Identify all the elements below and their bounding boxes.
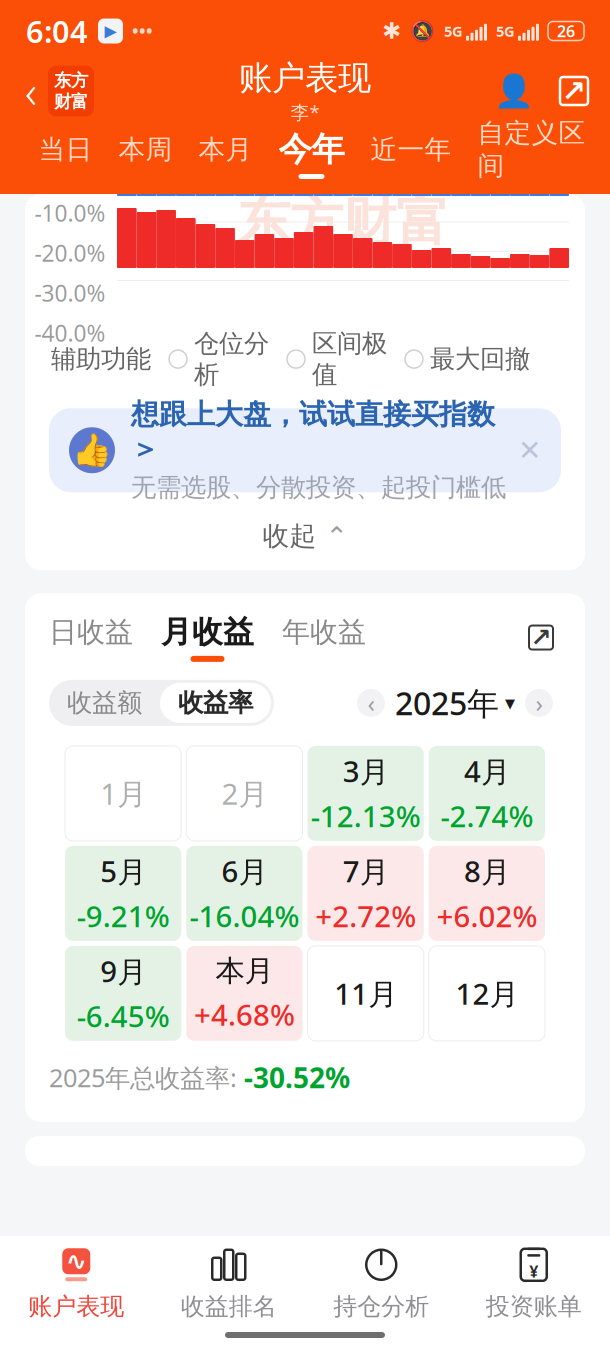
staticText: 11月: [334, 974, 397, 1013]
staticText: 月收益: [161, 613, 254, 651]
button[interactable]: 东方财富: [48, 66, 94, 116]
button[interactable]: 下一年: [525, 689, 553, 717]
staticText: 收起: [262, 520, 316, 553]
button[interactable]: 近一年: [357, 128, 464, 180]
staticText: -12.13%: [311, 796, 421, 835]
staticText: -30.0%: [34, 278, 105, 308]
staticText: 9月: [100, 951, 146, 990]
staticText: 12月: [455, 974, 518, 1013]
staticText: 最大回撤: [430, 344, 530, 375]
button[interactable]: 本周: [105, 128, 185, 180]
button[interactable]: 4月: [429, 746, 545, 841]
staticText: 今年: [278, 129, 344, 170]
button[interactable]: 今年: [265, 128, 357, 180]
button[interactable]: 本月: [185, 128, 265, 180]
staticText: 本月: [198, 133, 252, 166]
button[interactable]: 月收益: [161, 613, 254, 662]
button[interactable]: 👍: [25, 408, 585, 492]
staticText: 2025年总收益率:: [49, 1061, 244, 1094]
button[interactable]: 本月: [186, 946, 302, 1041]
button[interactable]: 区间极值: [287, 328, 387, 390]
button[interactable]: 返回: [14, 66, 48, 116]
staticText: 3月: [343, 751, 389, 790]
button[interactable]: 最大回撤: [405, 344, 530, 375]
button[interactable]: 持仓分析: [305, 1236, 457, 1332]
button[interactable]: 7月: [307, 846, 424, 941]
staticText: ✱: [382, 18, 401, 44]
staticText: 收益排名: [181, 1292, 277, 1321]
staticText: 辅助功能: [51, 344, 151, 375]
staticText: 26: [557, 20, 575, 42]
staticText: 2月: [221, 774, 267, 813]
staticText: 无需选股、分散投资、起投门槛低: [131, 472, 506, 503]
staticText: 财富: [54, 91, 88, 112]
staticText: 账户表现: [28, 1292, 124, 1321]
staticText: 东方财富: [237, 189, 449, 255]
staticText: 8月: [464, 851, 510, 890]
staticText: ‹: [367, 687, 374, 719]
staticText: 自定义区间: [477, 117, 585, 182]
staticText: 0.0%: [54, 158, 105, 188]
staticText: 6月: [221, 851, 267, 890]
button[interactable]: 收益额: [49, 680, 160, 726]
staticText: -30.52%: [244, 1059, 350, 1096]
staticText: 👤: [494, 73, 534, 109]
staticText: -20.0%: [34, 238, 105, 268]
staticText: 本月: [215, 953, 273, 989]
button[interactable]: 用户: [492, 68, 536, 114]
staticText: •••: [132, 19, 153, 42]
staticText: 想跟上大盘，试试直接买指数 ＞: [131, 397, 495, 466]
staticText: 年收益: [282, 615, 366, 649]
staticText: 李*: [290, 100, 319, 124]
staticText: 6:04: [26, 11, 88, 51]
staticText: -10.0%: [34, 198, 105, 228]
button[interactable]: 12月: [429, 946, 545, 1041]
button[interactable]: 9月: [65, 946, 181, 1041]
button[interactable]: 6月: [186, 846, 302, 941]
staticText: 🔕: [410, 20, 435, 42]
button[interactable]: 日收益: [49, 615, 133, 660]
staticText: -16.04%: [189, 896, 299, 935]
button[interactable]: 收起: [25, 516, 585, 556]
staticText: ¥: [529, 1261, 538, 1282]
staticText: ⌃: [325, 521, 347, 551]
staticText: 投资账单: [486, 1292, 582, 1321]
staticText: ↗: [561, 74, 586, 108]
button[interactable]: 5月: [65, 846, 181, 941]
button[interactable]: 2025年: [395, 682, 515, 724]
staticText: 日收益: [49, 615, 133, 649]
staticText: +4.68%: [194, 995, 295, 1034]
button[interactable]: 收益排名: [152, 1236, 305, 1332]
staticText: +2.72%: [315, 896, 416, 935]
button[interactable]: ¥: [457, 1236, 610, 1332]
button[interactable]: ∿: [0, 1236, 152, 1332]
staticText: 东方: [54, 70, 88, 91]
button[interactable]: 分享: [521, 618, 561, 658]
staticText: ↗: [530, 623, 551, 652]
button[interactable]: 11月: [307, 946, 424, 1041]
staticText: 1月: [100, 774, 146, 813]
button[interactable]: 当日: [25, 128, 105, 180]
staticText: 本周: [118, 133, 172, 166]
staticText: 7月: [343, 851, 389, 890]
staticText: ▶: [104, 22, 116, 40]
button[interactable]: 自定义区间: [464, 128, 598, 180]
button[interactable]: 分享: [552, 68, 596, 114]
staticText: 👍: [72, 432, 112, 469]
staticText: -2.74%: [440, 796, 533, 835]
button[interactable]: 3月: [307, 746, 424, 841]
staticText: 区间极值: [312, 328, 387, 390]
button[interactable]: 上一年: [357, 689, 385, 717]
staticText: ›: [535, 687, 542, 719]
button[interactable]: 1月: [65, 746, 181, 841]
staticText: -40.0%: [34, 318, 105, 348]
staticText: 5月: [100, 851, 146, 890]
button[interactable]: 2月: [186, 746, 302, 841]
button[interactable]: 8月: [429, 846, 545, 941]
staticText: 当日: [38, 133, 92, 166]
button[interactable]: 年收益: [282, 615, 366, 660]
staticText: 仓位分析: [194, 328, 269, 390]
button[interactable]: 仓位分析: [169, 328, 269, 390]
button[interactable]: 收益率: [160, 683, 271, 723]
staticText: -6.45%: [77, 996, 170, 1035]
